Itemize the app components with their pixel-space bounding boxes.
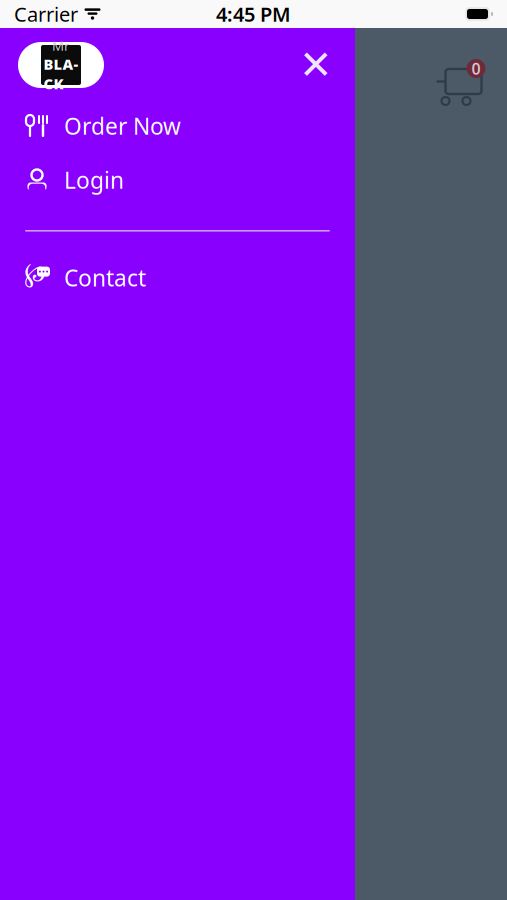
button[interactable]: Cart: [433, 56, 489, 108]
button[interactable]: Order Now: [0, 108, 355, 144]
staticText: Mr: [52, 37, 70, 54]
staticText: ✕: [299, 42, 333, 88]
staticText: Carrier: [14, 1, 78, 27]
staticText: BLACK: [43, 54, 78, 93]
staticText: Contact: [64, 262, 146, 293]
staticText: Login: [64, 165, 124, 195]
button[interactable]: ℘: [0, 260, 355, 296]
staticText: s: [63, 133, 74, 163]
button[interactable]: Login: [0, 162, 355, 198]
staticText: ℘: [24, 253, 46, 289]
staticText: Topped Sou: [110, 133, 236, 163]
staticText: ssants: [0, 232, 81, 265]
button[interactable]: Mr Black home: [18, 42, 104, 88]
staticText: 4:45 PM: [216, 1, 291, 27]
button[interactable]: Close menu: [293, 42, 339, 88]
button[interactable]: Add: [20, 283, 114, 323]
staticText: Order Now: [64, 111, 181, 141]
staticText: 0: [471, 58, 480, 79]
